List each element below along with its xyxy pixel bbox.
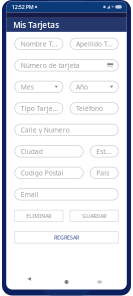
button[interactable]: REGRESAR xyxy=(15,232,118,243)
button[interactable]: Tipo Tarjeta xyxy=(15,103,63,114)
button[interactable]: Pais xyxy=(90,167,118,179)
button[interactable]: Teléfono xyxy=(70,103,118,114)
staticText: ✳ xyxy=(111,5,114,9)
staticText: Apellido T... xyxy=(76,39,113,48)
staticText: GUARDAR xyxy=(82,212,106,219)
button[interactable]: Mes xyxy=(15,81,63,93)
staticText: Número de tarjeta xyxy=(21,61,80,70)
staticText: Est... xyxy=(96,147,111,156)
staticText: ELIMINAR xyxy=(26,212,51,219)
staticText: Mis Tarjetas xyxy=(13,20,59,30)
staticText: Pais xyxy=(96,168,109,177)
button[interactable]: Email xyxy=(15,189,118,200)
staticText: Calle y Numero xyxy=(21,125,70,134)
staticText: Mes xyxy=(21,82,34,91)
button[interactable]: Recents xyxy=(94,277,106,287)
button[interactable]: Apellido T... xyxy=(70,38,118,50)
button[interactable]: GUARDAR xyxy=(70,210,118,222)
staticText: Codigo Postal xyxy=(21,168,64,177)
staticText: REGRESAR xyxy=(54,234,79,241)
staticText: Email xyxy=(21,190,39,199)
staticText: Ciudad xyxy=(21,147,43,156)
staticText: Año xyxy=(76,82,88,91)
button[interactable]: Back xyxy=(27,277,39,287)
button[interactable]: Calle y Numero xyxy=(15,124,118,136)
button[interactable]: Ciudad xyxy=(15,146,83,157)
button[interactable]: Home xyxy=(60,277,72,287)
staticText: Teléfono xyxy=(76,104,103,113)
staticText: Nombre T... xyxy=(21,39,58,48)
button[interactable]: Número de tarjeta xyxy=(15,60,118,71)
button[interactable]: Codigo Postal xyxy=(15,167,83,179)
button[interactable]: Año xyxy=(70,81,118,93)
staticText: Tipo Tarjeta xyxy=(21,104,58,113)
staticText: 12:52 PM xyxy=(12,3,34,10)
button[interactable]: ELIMINAR xyxy=(15,210,63,222)
button[interactable]: Est... xyxy=(90,146,118,157)
button[interactable]: Nombre T... xyxy=(15,38,63,50)
